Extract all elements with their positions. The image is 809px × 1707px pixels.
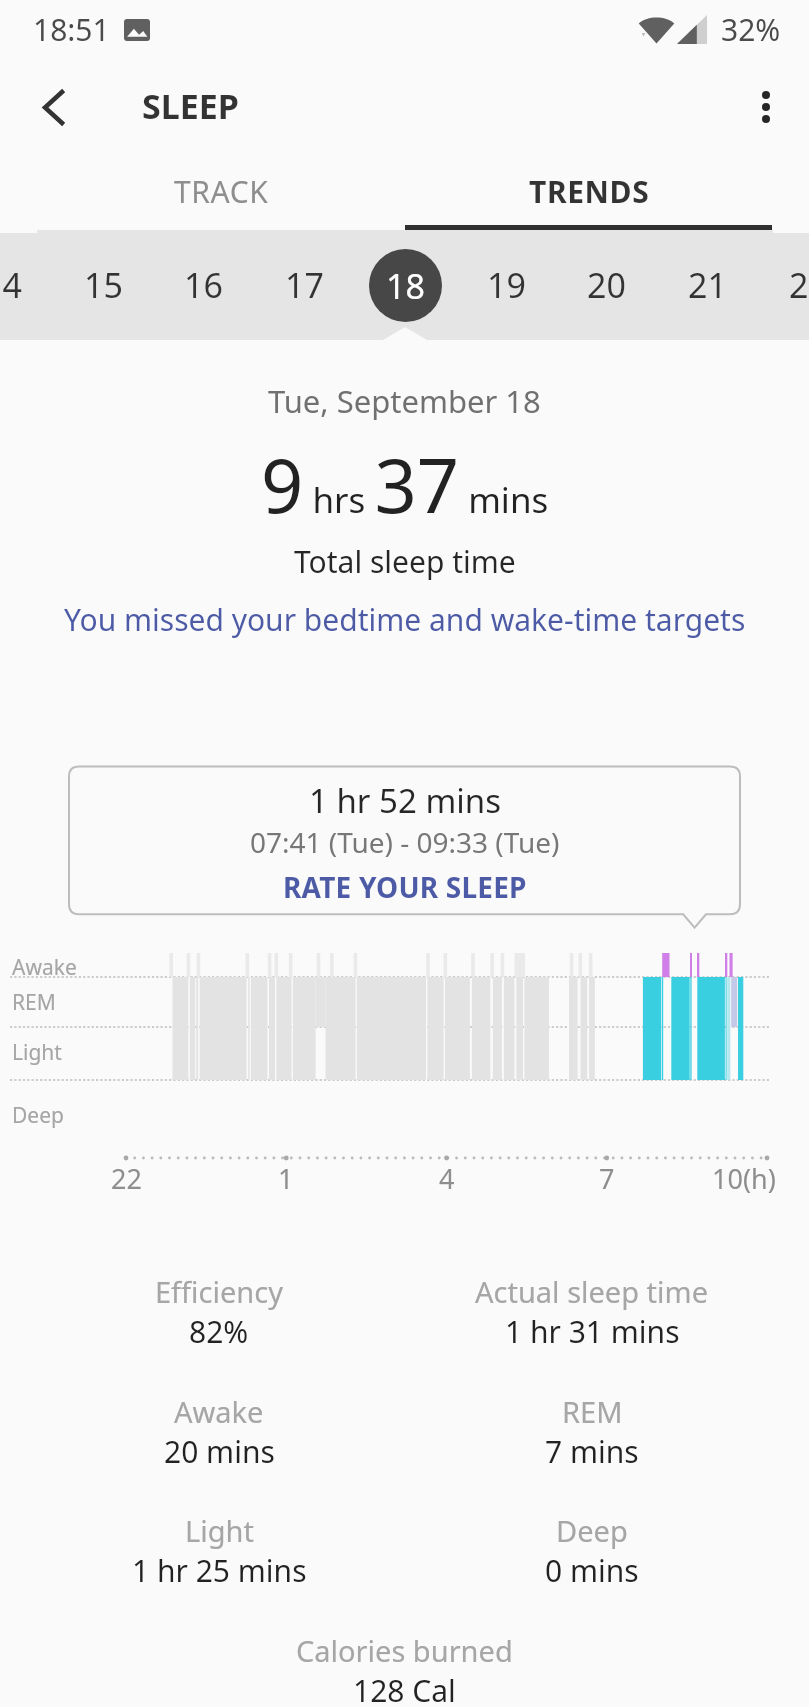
- staticText: Efficiency: [155, 1272, 283, 1311]
- staticText: 32%: [721, 9, 781, 50]
- button[interactable]: 14: [0, 230, 52, 340]
- staticText: 21: [688, 262, 727, 308]
- staticText: Tue, September 18: [268, 380, 541, 422]
- staticText: TRENDS: [529, 171, 650, 212]
- staticText: 128 Cal: [353, 1670, 456, 1707]
- staticText: 7 mins: [545, 1431, 639, 1472]
- button[interactable]: 16: [153, 230, 253, 340]
- button[interactable]: 19: [456, 230, 556, 340]
- staticText: 18: [386, 263, 425, 309]
- staticText: TRACK: [174, 171, 269, 212]
- staticText: Awake: [174, 1392, 264, 1431]
- staticText: Light: [12, 1038, 62, 1067]
- button[interactable]: TRACK: [37, 152, 405, 230]
- staticText: 14: [0, 262, 22, 308]
- staticText: 4: [439, 1160, 455, 1197]
- staticText: Calories burned: [296, 1631, 513, 1670]
- staticText: Total sleep time: [294, 541, 516, 582]
- staticText: 1 hr 52 mins: [309, 778, 501, 823]
- staticText: 16: [184, 262, 223, 308]
- staticText: 1: [278, 1160, 294, 1197]
- staticText: 82%: [189, 1311, 249, 1352]
- button[interactable]: Back: [18, 72, 88, 142]
- button[interactable]: 15: [53, 230, 153, 340]
- staticText: 1 hr 31 mins: [505, 1311, 680, 1352]
- staticText: Awake: [12, 953, 77, 982]
- staticText: Actual sleep time: [475, 1272, 709, 1311]
- staticText: 22: [111, 1160, 142, 1197]
- staticText: Deep: [556, 1511, 628, 1550]
- button[interactable]: TRENDS: [405, 152, 774, 230]
- staticText: Deep: [12, 1101, 64, 1130]
- staticText: 15: [84, 262, 123, 308]
- button[interactable]: 18: [355, 230, 455, 340]
- staticText: 07:41 (Tue) - 09:33 (Tue): [250, 823, 560, 861]
- staticText: Light: [185, 1511, 254, 1550]
- button[interactable]: 17: [254, 230, 354, 340]
- staticText: 22: [789, 262, 809, 308]
- staticText: SLEEP: [142, 83, 239, 129]
- staticText: RATE YOUR SLEEP: [283, 868, 527, 906]
- button[interactable]: 21: [657, 230, 757, 340]
- staticText: REM: [12, 988, 56, 1017]
- staticText: 20: [587, 262, 626, 308]
- staticText: 18:51: [33, 9, 110, 50]
- button[interactable]: 20: [556, 230, 656, 340]
- staticText: 0 mins: [545, 1550, 639, 1591]
- staticText: 17: [285, 262, 324, 308]
- staticText: 19: [487, 262, 526, 308]
- button[interactable]: More options: [731, 72, 801, 142]
- button[interactable]: 22: [758, 230, 809, 340]
- staticText: REM: [562, 1392, 623, 1431]
- staticText: 9 hrs 37 mins: [261, 434, 549, 535]
- staticText: You missed your bedtime and wake-time ta…: [64, 599, 746, 640]
- staticText: 10(h): [712, 1160, 776, 1197]
- staticText: 1 hr 25 mins: [132, 1550, 307, 1591]
- staticText: 7: [599, 1160, 615, 1197]
- staticText: 20 mins: [164, 1431, 275, 1472]
